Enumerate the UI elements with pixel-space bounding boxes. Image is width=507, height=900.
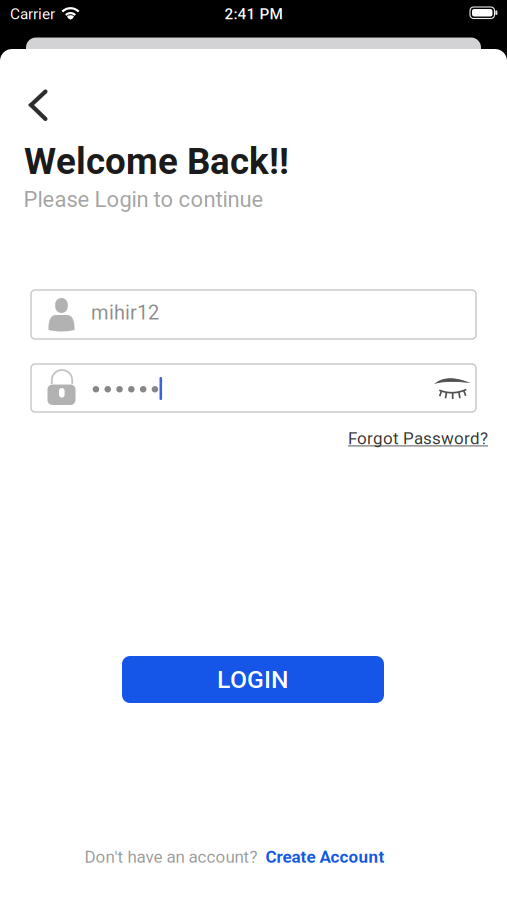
button[interactable]: Show password [429, 370, 474, 406]
button[interactable]: Username [31, 290, 476, 339]
staticText: Please Login to continue [24, 187, 264, 212]
staticText: Don't have an account? [84, 847, 265, 867]
staticText: mihir12 [91, 301, 159, 324]
staticText: LOGIN [217, 665, 289, 694]
staticText: Carrier [10, 5, 55, 23]
button[interactable]: LOGIN [122, 656, 384, 703]
staticText: 2:41 PM [224, 5, 282, 23]
button[interactable]: Create Account [265, 847, 384, 867]
staticText: Create Account [265, 847, 384, 867]
button[interactable]: Forgot Password? [348, 428, 488, 448]
button[interactable]: Back [0, 83, 58, 127]
staticText: Forgot Password? [348, 428, 488, 448]
staticText: Welcome Back!! [24, 140, 289, 183]
button[interactable]: Password [31, 364, 476, 412]
